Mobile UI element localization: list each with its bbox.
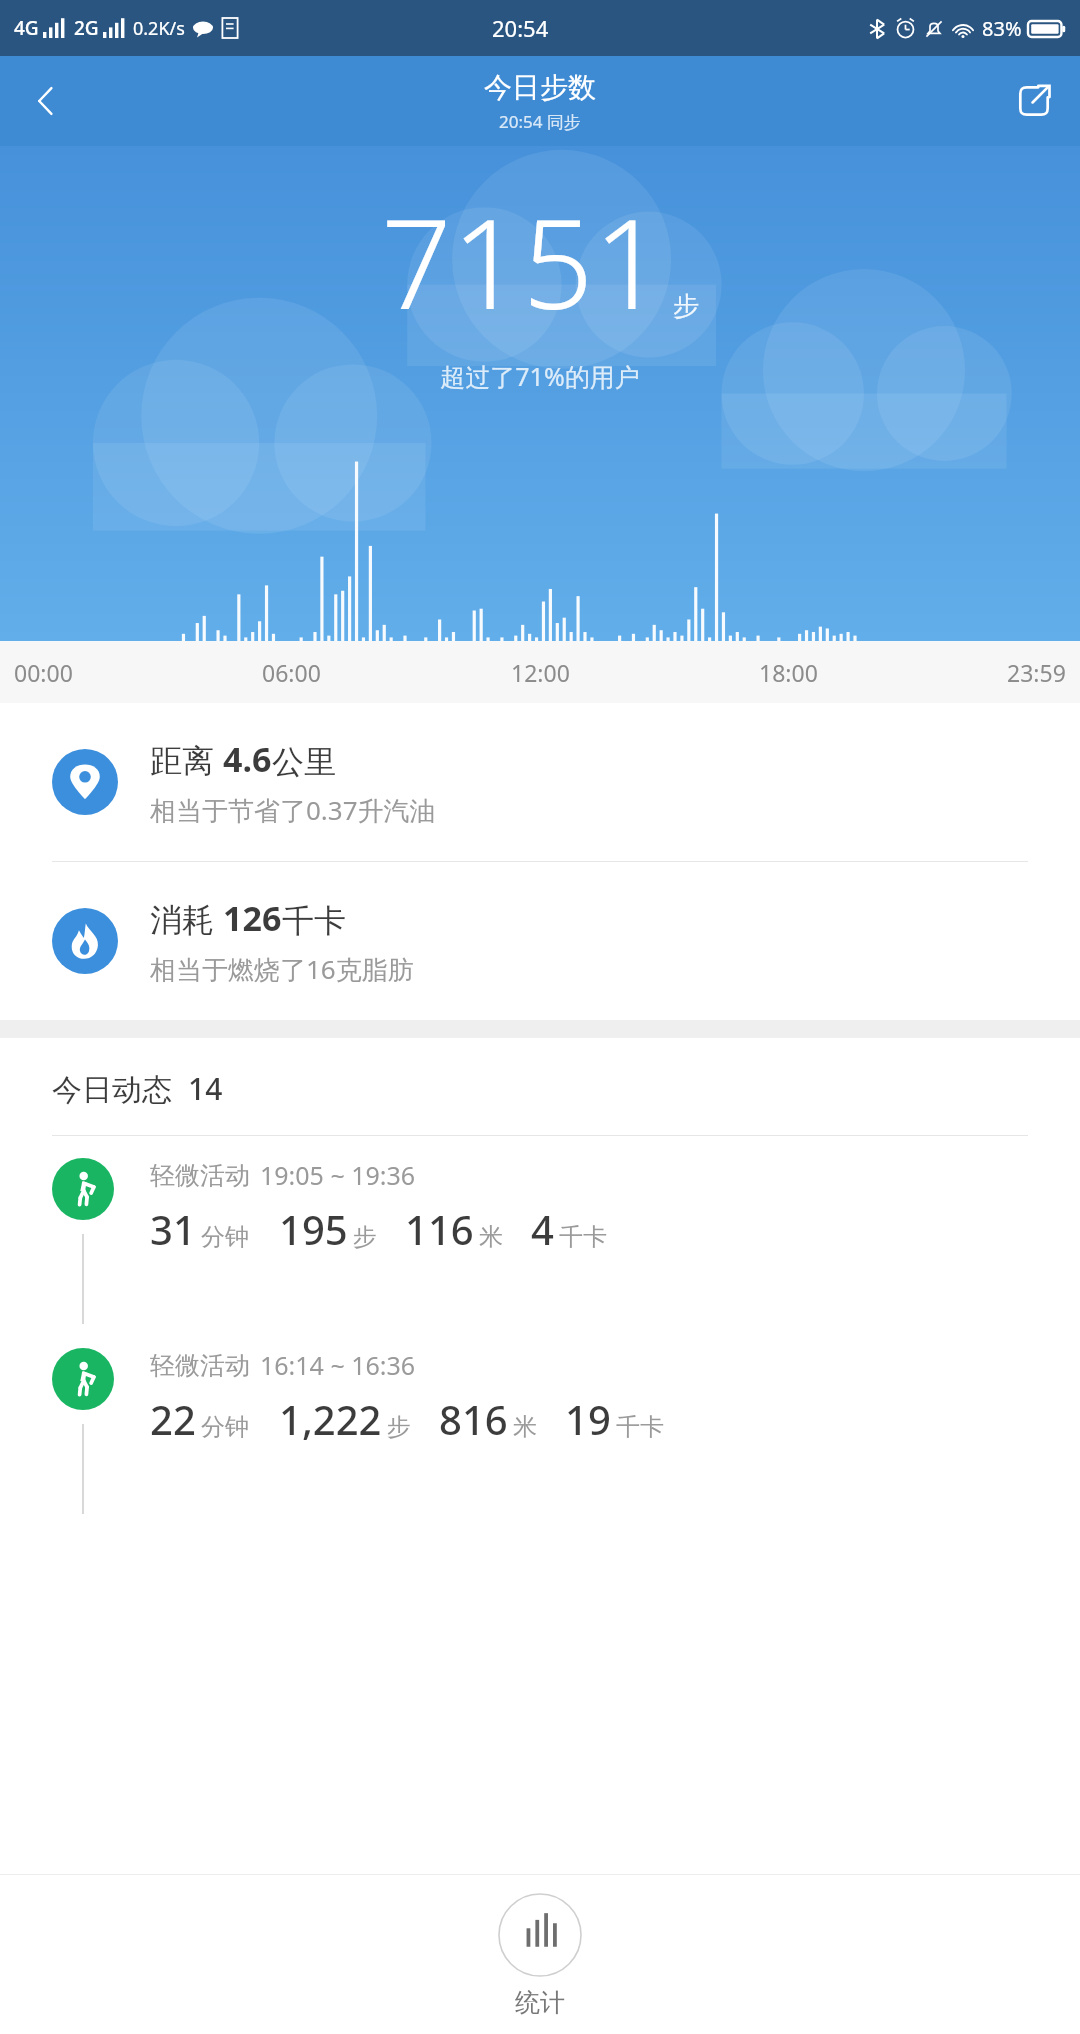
button[interactable]: 消耗 (0, 862, 1080, 1020)
staticText: 千卡 (616, 1412, 664, 1442)
button[interactable]: Back (0, 56, 92, 146)
staticText: 83% (982, 15, 1022, 42)
staticText: 今日步数 (484, 70, 596, 105)
staticText: 126 (223, 895, 282, 941)
staticText: 步 (387, 1412, 411, 1442)
button[interactable]: 统计 (455, 1875, 625, 2034)
staticText: 今日动态 (52, 1071, 172, 1109)
staticText: 0.2K/s (133, 16, 185, 41)
staticText: 19 (565, 1392, 611, 1446)
button[interactable]: 距离 (0, 703, 1080, 861)
staticText: 31 (150, 1202, 196, 1256)
staticText: 116 (405, 1202, 474, 1256)
staticText: 超过了71%的用户 (0, 359, 1080, 393)
staticText: 06:00 (262, 657, 321, 688)
staticText: 米 (479, 1222, 503, 1252)
staticText: 12:00 (511, 657, 570, 688)
staticText: 18:00 (759, 657, 818, 688)
button[interactable]: 轻微活动 (0, 1136, 1080, 1326)
staticText: 2G (74, 15, 99, 41)
staticText: 分钟 (201, 1412, 249, 1442)
staticText: 1,222 (279, 1392, 382, 1446)
button[interactable]: Share (988, 56, 1080, 146)
staticText: 19:05 ~ 19:36 (260, 1158, 416, 1192)
staticText: 816 (439, 1392, 508, 1446)
staticText: 4 (531, 1202, 554, 1256)
staticText: 195 (279, 1202, 348, 1256)
staticText: 16:14 ~ 16:36 (260, 1348, 416, 1382)
staticText: 相当于燃烧了16克脂肪 (150, 951, 414, 987)
staticText: 14 (188, 1068, 223, 1109)
staticText: 统计 (515, 1987, 565, 2018)
staticText: 4.6 (223, 736, 272, 782)
staticText: 20:54 同步 (499, 110, 581, 133)
staticText: 20:54 (492, 13, 549, 43)
staticText: 消耗 (150, 897, 223, 941)
staticText: 00:00 (14, 657, 73, 688)
staticText: 22 (150, 1392, 196, 1446)
staticText: 23:59 (1007, 657, 1066, 688)
staticText: 公里 (272, 742, 336, 782)
staticText: 7151 (381, 176, 665, 345)
staticText: 4G (14, 15, 39, 41)
staticText: 分钟 (201, 1222, 249, 1252)
staticText: 相当于节省了0.37升汽油 (150, 792, 436, 828)
staticText: 轻微活动 (150, 1350, 250, 1381)
staticText: 步 (673, 290, 699, 323)
staticText: 千卡 (282, 901, 346, 941)
staticText: 米 (513, 1412, 537, 1442)
staticText: 轻微活动 (150, 1160, 250, 1191)
staticText: 距离 (150, 738, 223, 782)
button[interactable]: 轻微活动 (0, 1326, 1080, 1516)
staticText: 千卡 (559, 1222, 607, 1252)
staticText: 步 (353, 1222, 377, 1252)
